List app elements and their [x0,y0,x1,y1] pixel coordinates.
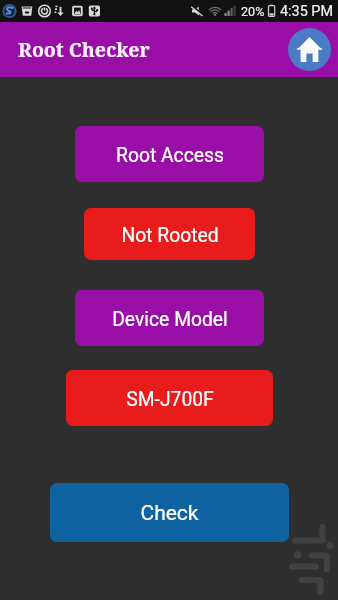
button[interactable]: SM-J700F [66,370,273,426]
staticText: Root Checker [18,36,150,63]
staticText: Device Model [112,308,228,331]
button[interactable]: Check [50,483,289,542]
staticText: Check [140,501,199,526]
staticText: Root Access [116,144,224,167]
staticText: 20% [241,4,265,19]
button[interactable]: Home [288,28,331,71]
staticText: SM-J700F [126,388,214,411]
staticText: Not Rooted [121,224,219,247]
button[interactable]: Not Rooted [84,208,255,260]
staticText: 4:35 PM [280,3,333,20]
button[interactable]: Device Model [75,290,264,346]
button[interactable]: Root Access [75,126,264,182]
